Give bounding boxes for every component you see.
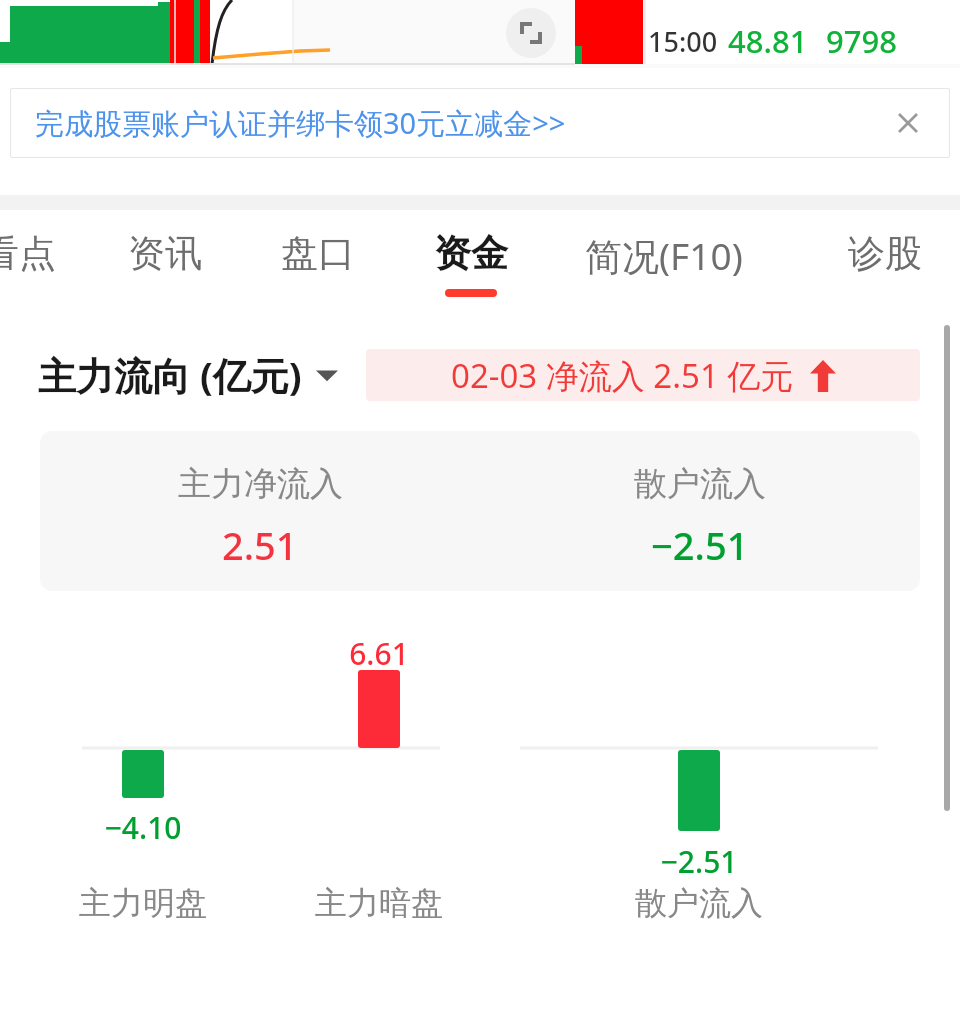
staticText: 主力流向 (亿元) xyxy=(38,349,302,401)
button[interactable]: Close banner xyxy=(886,101,930,145)
button[interactable]: 完成股票账户认证并绑卡领30元立减金>> xyxy=(10,88,950,158)
staticText: 看点 xyxy=(0,230,56,277)
staticText: 完成股票账户认证并绑卡领30元立减金>> xyxy=(35,103,566,143)
staticText: 主力明盘 xyxy=(75,883,211,923)
button[interactable]: 主力净流入 xyxy=(40,431,480,591)
button[interactable]: 主力流向 (亿元) xyxy=(38,349,338,401)
staticText: 15:00 xyxy=(648,23,718,60)
staticText: 散户流入 xyxy=(631,883,767,923)
staticText: 6.61 xyxy=(348,633,410,674)
staticText: 资金 xyxy=(434,230,508,277)
staticText: −4.10 xyxy=(103,807,183,848)
button[interactable]: 02-03 净流入 2.51 亿元 xyxy=(366,349,920,401)
button[interactable]: 简况(F10) xyxy=(585,210,743,315)
staticText: 2.51 xyxy=(222,519,298,571)
button[interactable]: Fullscreen chart xyxy=(506,8,556,58)
button[interactable]: 资金 xyxy=(434,210,508,315)
staticText: 9798 xyxy=(826,20,897,62)
staticText: 02-03 净流入 2.51 亿元 xyxy=(451,353,794,398)
staticText: 48.81 xyxy=(728,20,808,62)
button[interactable]: 诊股 xyxy=(848,210,922,315)
staticText: −2.51 xyxy=(651,519,749,571)
button[interactable]: 资讯 xyxy=(128,210,202,315)
staticText: 盘口 xyxy=(281,230,355,277)
staticText: 主力净流入 xyxy=(178,463,343,505)
staticText: 资讯 xyxy=(128,230,202,277)
staticText: 主力暗盘 xyxy=(311,883,447,923)
button[interactable]: 散户流入 xyxy=(480,431,920,591)
staticText: 简况(F10) xyxy=(585,230,743,281)
staticText: 诊股 xyxy=(848,230,922,277)
button[interactable]: 看点 xyxy=(0,210,56,315)
button[interactable]: 盘口 xyxy=(281,210,355,315)
staticText: −2.51 xyxy=(659,841,739,882)
staticText: 散户流入 xyxy=(634,463,766,505)
